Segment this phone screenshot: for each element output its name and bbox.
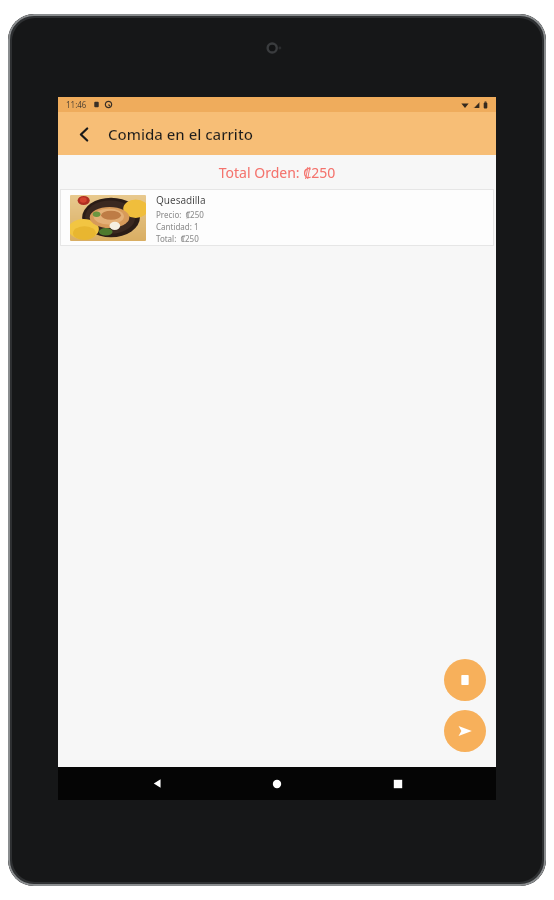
button[interactable]: Quesadilla (60, 189, 494, 246)
staticText: Comida en el carrito (108, 124, 253, 144)
button[interactable]: Atrás (135, 767, 179, 800)
button[interactable]: Recientes (376, 767, 420, 800)
staticText: Total Orden: ₡250 (58, 163, 496, 182)
staticText: Cantidad: 1 (156, 221, 199, 232)
staticText: Total: ₡250 (156, 233, 199, 242)
button[interactable]: Atrás (66, 116, 102, 152)
staticText: Precio: ₡250 (156, 209, 204, 220)
staticText: 11:46 (66, 99, 87, 110)
staticText: Quesadilla (156, 193, 206, 207)
button[interactable]: Vaciar carrito (444, 659, 486, 701)
button[interactable]: Inicio (255, 767, 299, 800)
button[interactable]: Enviar orden (444, 710, 486, 752)
